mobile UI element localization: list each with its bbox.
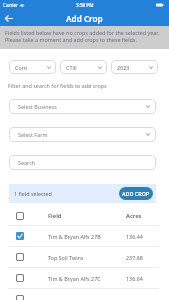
staticText: Select Business <box>18 103 57 110</box>
staticText: Add Crop <box>66 13 103 24</box>
staticText: Filter and search for fields to add crop… <box>8 82 107 89</box>
staticText: Corn <box>15 64 28 71</box>
staticText: Acres <box>126 212 158 220</box>
staticText: Please take a moment and add crops to th… <box>5 36 137 43</box>
staticText: 3:58 PM <box>76 2 94 8</box>
staticText: 2023 <box>117 64 130 71</box>
button[interactable]: Tim & Bryan Alfs 27B <box>0 226 169 246</box>
button[interactable]: Corn <box>9 60 56 74</box>
button[interactable]: CTill <box>60 60 107 74</box>
button[interactable]: Select Farm <box>9 127 156 142</box>
staticText: 237.68 <box>126 254 158 261</box>
staticText: Top Soil Twins <box>48 254 84 261</box>
button[interactable]: ADD CROP <box>119 187 153 200</box>
staticText: 136.64 <box>126 275 158 282</box>
button[interactable]: 2023 <box>111 60 158 74</box>
button[interactable]: Select all fields <box>16 206 24 225</box>
staticText: Carrier <box>3 2 18 8</box>
staticText: 1 field selected <box>14 190 52 197</box>
button[interactable] <box>0 289 169 300</box>
staticText: Select Farm <box>18 131 48 138</box>
button[interactable]: Tim & Bryan Alfs 27C <box>0 268 169 288</box>
staticText: Tim & Bryan Alfs 27B <box>48 233 101 240</box>
staticText: 136.44 <box>126 233 158 240</box>
staticText: CTill <box>66 64 77 71</box>
staticText: Tim & Bryan Alfs 27C <box>48 275 101 282</box>
button[interactable]: Select Business <box>9 99 156 114</box>
staticText: Field <box>48 212 62 220</box>
button[interactable]: Search <box>9 155 156 170</box>
button[interactable]: Top Soil Twins <box>0 247 169 267</box>
staticText: Search <box>18 159 36 166</box>
staticText: ADD CROP <box>122 190 150 197</box>
button[interactable]: Back <box>0 10 18 26</box>
staticText: Fields listed below have no crops added … <box>5 29 160 36</box>
